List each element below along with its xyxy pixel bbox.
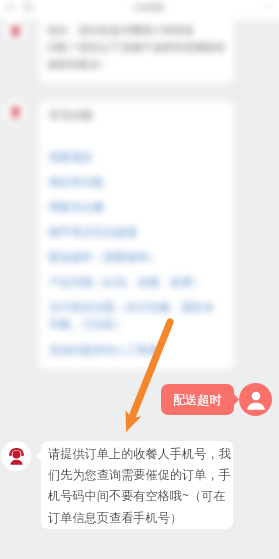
staticText: 您好，请问您是对哪笔订单有疑 问呢？请在以下选项中选择您需要服务 感谢您配合~ bbox=[47, 24, 226, 71]
button[interactable]: 配送超时（我要催单） bbox=[49, 250, 224, 275]
button[interactable]: Close bbox=[22, 1, 34, 13]
button[interactable]: 我要退款 bbox=[49, 150, 224, 175]
staticText: 小哈客服 bbox=[132, 2, 164, 12]
staticText: 我要退款 bbox=[49, 150, 93, 164]
staticText: 产品功能（红包、优惠、发票） bbox=[49, 275, 203, 289]
button[interactable]: 其他问题咨询人工客服 bbox=[49, 343, 224, 357]
staticText: 骑手电话无法接通 bbox=[49, 225, 137, 239]
staticText: 请提供订单上的收餐人手机号，我们先为您查询需要催促的订单，手机号码中间不要有空格… bbox=[48, 446, 231, 525]
button[interactable]: 产品功能（红包、优惠、发票） bbox=[49, 275, 224, 300]
button[interactable]: 商品有问题 bbox=[49, 175, 224, 200]
staticText: 配送超时（我要催单） bbox=[49, 250, 159, 264]
button[interactable]: 配送超时 bbox=[161, 384, 234, 415]
button[interactable]: 支付相关问题（支付失败、退款未到账、已扣款） bbox=[49, 300, 224, 343]
staticText: 商品有问题 bbox=[49, 175, 104, 189]
button[interactable]: 商家未出餐 bbox=[49, 200, 224, 225]
staticText: 其他问题咨询人工客服 bbox=[49, 343, 159, 357]
staticText: 常见问题 bbox=[49, 108, 93, 122]
staticText: 商家未出餐 bbox=[49, 200, 104, 214]
staticText: 配送超时 bbox=[173, 392, 222, 407]
staticText: 支付相关问题（支付失败、退款未到账、已扣款） bbox=[49, 300, 224, 332]
button[interactable]: 骑手电话无法接通 bbox=[49, 225, 224, 250]
